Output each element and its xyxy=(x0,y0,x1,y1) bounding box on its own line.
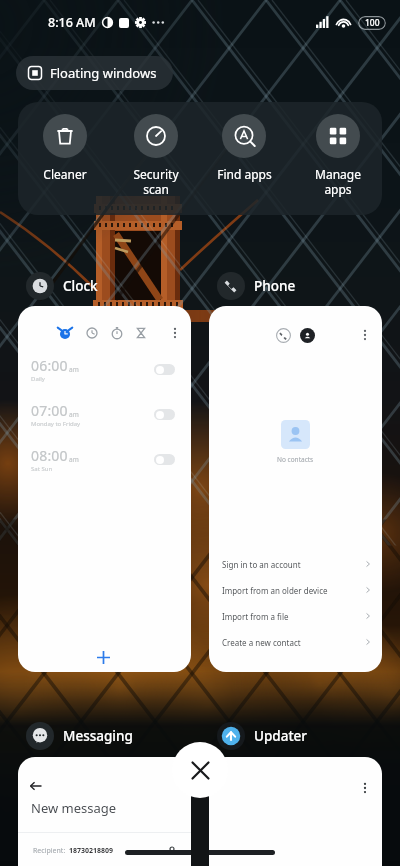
button[interactable]: Tab xyxy=(81,322,103,344)
staticText: Recipient: xyxy=(33,846,66,856)
button[interactable]: More options xyxy=(354,324,376,346)
staticText: 18730218809 xyxy=(69,846,114,856)
staticText: Messaging xyxy=(63,727,133,745)
button[interactable]: Sign in to an account xyxy=(209,551,382,577)
button[interactable]: Messaging xyxy=(26,722,133,750)
button[interactable]: Dialpad xyxy=(272,324,294,346)
button[interactable]: More options xyxy=(354,777,376,799)
button[interactable]: Clock xyxy=(26,272,98,300)
staticText: Import from an older device xyxy=(222,585,328,596)
button[interactable]: Manage apps xyxy=(294,114,382,197)
staticText: Manage apps xyxy=(315,166,361,197)
staticText: No contacts xyxy=(277,455,314,464)
button[interactable]: Tab xyxy=(130,322,152,344)
staticText: Import from a file xyxy=(222,611,289,622)
staticText: Sat Sun xyxy=(31,465,53,473)
staticText: 08:00 xyxy=(31,446,68,465)
button[interactable]: Security scan xyxy=(112,114,200,197)
staticText: 100 xyxy=(365,17,380,29)
staticText: Phone xyxy=(254,277,296,295)
button[interactable]: Create a new contact xyxy=(209,629,382,655)
button[interactable]: Floating windows xyxy=(16,56,173,90)
button[interactable]: 06:00 xyxy=(18,351,191,387)
button[interactable]: Tab xyxy=(54,322,76,344)
staticText: am xyxy=(69,410,79,419)
staticText: Sign in to an account xyxy=(222,559,301,570)
staticText: Updater xyxy=(254,727,308,745)
staticText: Find apps xyxy=(217,166,272,182)
button[interactable]: Import from a file xyxy=(209,603,382,629)
staticText: Cleaner xyxy=(43,166,87,182)
staticText: am xyxy=(69,365,79,374)
button[interactable]: 08:00 xyxy=(18,441,191,477)
button[interactable]: Add alarm xyxy=(88,642,118,672)
button[interactable]: Updater xyxy=(217,722,308,750)
button[interactable]: Phone xyxy=(217,272,296,300)
staticText: Security scan xyxy=(133,166,179,197)
button[interactable]: Contacts xyxy=(296,324,318,346)
staticText: 8:16 AM xyxy=(48,14,96,31)
button[interactable]: Import from an older device xyxy=(209,577,382,603)
staticText: Monday to Friday xyxy=(31,420,81,428)
button[interactable]: Close all xyxy=(172,742,228,798)
button[interactable]: Tab xyxy=(106,322,128,344)
staticText: 06:00 xyxy=(31,356,68,375)
button[interactable]: More options xyxy=(164,322,186,344)
staticText: Daily xyxy=(31,375,45,383)
button[interactable]: Cleaner xyxy=(21,114,109,182)
button[interactable]: Find apps xyxy=(200,114,288,182)
staticText: New message xyxy=(31,799,117,817)
button[interactable]: Back xyxy=(25,775,47,797)
staticText: Create a new contact xyxy=(222,637,301,648)
staticText: Clock xyxy=(63,277,98,295)
staticText: Floating windows xyxy=(50,64,157,82)
button[interactable]: 07:00 xyxy=(18,396,191,432)
staticText: am xyxy=(69,455,79,464)
staticText: 07:00 xyxy=(31,401,68,420)
